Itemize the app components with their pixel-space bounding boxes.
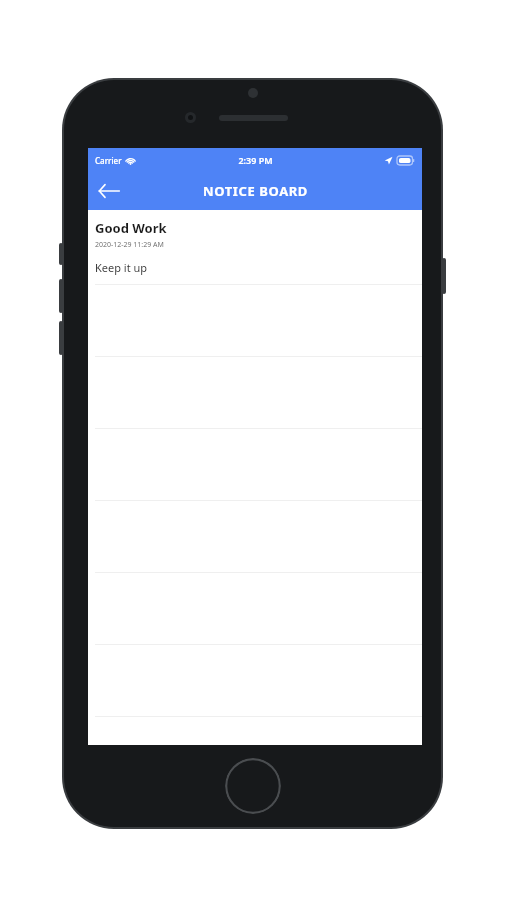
staticText: 2:39 PM (238, 154, 273, 166)
staticText: Carrier (95, 155, 122, 166)
staticText: 2020-12-29 11:29 AM (95, 240, 164, 250)
button[interactable]: Good Work (88, 210, 422, 284)
staticText: Good Work (95, 219, 167, 237)
staticText: Keep it up (95, 260, 148, 275)
staticText: NOTICE BOARD (203, 182, 308, 200)
button[interactable]: Back (88, 172, 130, 210)
